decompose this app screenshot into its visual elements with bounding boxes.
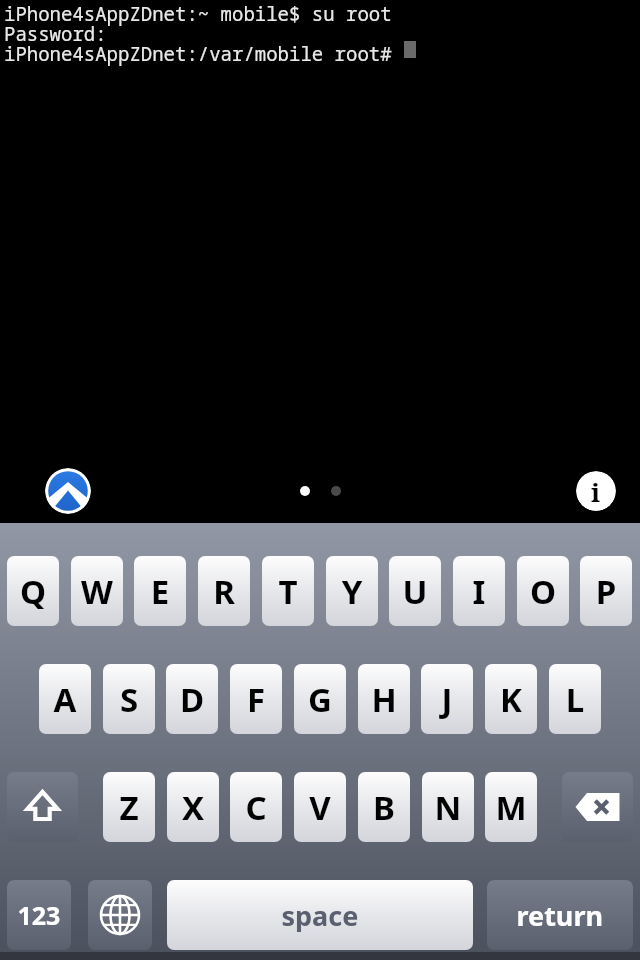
button[interactable] [421,664,473,734]
button[interactable] [294,772,346,842]
button[interactable] [422,772,474,842]
button[interactable] [358,664,410,734]
button[interactable] [167,880,473,950]
button[interactable]: Shift [7,772,78,842]
button[interactable] [103,772,155,842]
button[interactable] [103,664,155,734]
button[interactable] [389,556,441,626]
button[interactable] [71,556,123,626]
button[interactable] [326,556,378,626]
button[interactable] [487,880,633,950]
button[interactable]: Change keyboard language [88,880,152,950]
button[interactable] [167,772,219,842]
button[interactable] [358,772,410,842]
button[interactable] [198,556,250,626]
button[interactable] [453,556,505,626]
button[interactable] [580,556,632,626]
button[interactable] [230,772,282,842]
button[interactable] [230,664,282,734]
button[interactable] [7,556,59,626]
button[interactable] [549,664,601,734]
button[interactable] [294,664,346,734]
button[interactable] [485,772,537,842]
button[interactable] [517,556,569,626]
button[interactable] [485,664,537,734]
button[interactable]: Show toolbar [45,468,91,514]
button[interactable] [166,664,218,734]
button[interactable]: Info [576,471,616,511]
button[interactable]: Backspace [562,772,633,842]
button[interactable] [7,880,71,950]
button[interactable] [262,556,314,626]
button[interactable] [134,556,186,626]
button[interactable] [39,664,91,734]
